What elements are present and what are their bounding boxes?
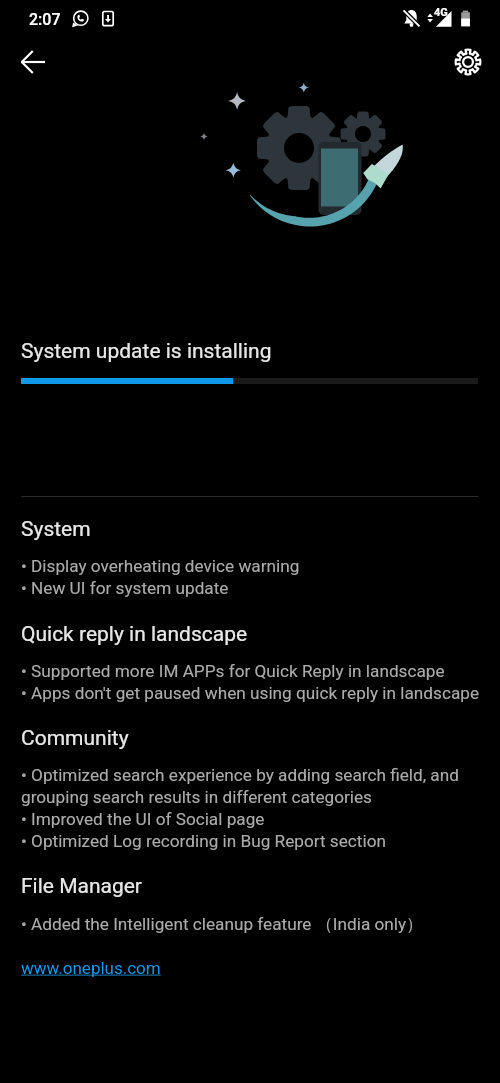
staticText: • Optimized search experience by adding … xyxy=(21,765,479,852)
staticText: 4G xyxy=(434,6,448,19)
staticText: • Supported more IM APPs for Quick Reply… xyxy=(21,661,479,704)
staticText: System xyxy=(21,517,91,542)
staticText: System update is installing xyxy=(21,339,272,364)
staticText: Community xyxy=(21,726,129,751)
button[interactable]: Back xyxy=(9,38,57,86)
staticText: Quick reply in landscape xyxy=(21,622,248,647)
staticText: • Added the Intelligent cleanup feature … xyxy=(21,913,479,935)
staticText: • Display overheating device warning • N… xyxy=(21,556,479,599)
button[interactable]: Settings xyxy=(446,40,490,84)
staticText: 2:07 xyxy=(29,10,61,29)
staticText: File Manager xyxy=(21,874,142,899)
button[interactable]: www.oneplus.com xyxy=(21,958,161,978)
